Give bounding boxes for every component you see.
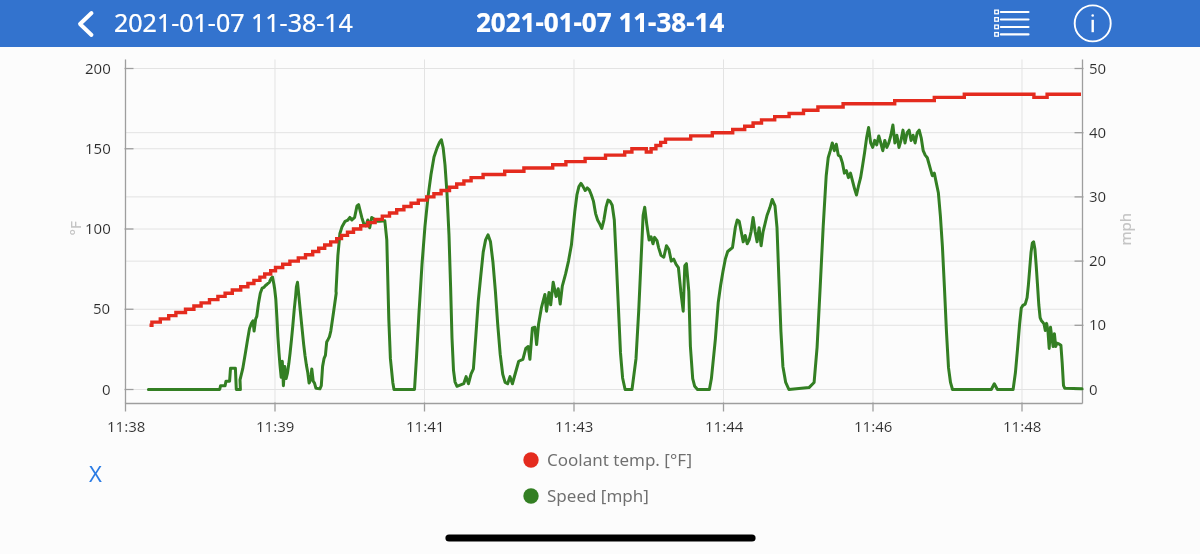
staticText: 40: [1089, 122, 1107, 142]
staticText: 11:38: [107, 416, 146, 436]
button[interactable]: Back: [72, 0, 371, 47]
staticText: 2021-01-07 11-38-14: [476, 4, 725, 39]
staticText: Coolant temp. [°F]: [547, 448, 692, 471]
button[interactable]: Info: [1069, 0, 1117, 47]
staticText: 200: [85, 58, 111, 78]
staticText: Speed [mph]: [547, 484, 649, 507]
staticText: 11:41: [406, 416, 445, 436]
button[interactable]: Show list: [979, 2, 1043, 46]
staticText: X: [89, 458, 102, 488]
button[interactable]: Speed [mph]: [517, 482, 649, 510]
staticText: 100: [85, 218, 111, 238]
staticText: 2021-01-07 11-38-14: [114, 5, 353, 39]
staticText: 30: [1089, 186, 1107, 206]
staticText: 11:46: [854, 416, 893, 436]
staticText: mph: [1114, 212, 1134, 245]
staticText: 11:44: [705, 416, 744, 436]
staticText: 11:43: [555, 416, 594, 436]
staticText: 11:48: [1003, 416, 1042, 436]
staticText: 0: [102, 379, 111, 399]
staticText: 0: [1089, 379, 1098, 399]
button[interactable]: Coolant temp. [°F]: [517, 446, 692, 474]
staticText: 50: [93, 298, 111, 318]
staticText: 50: [1089, 58, 1107, 78]
staticText: °F: [64, 220, 84, 235]
button[interactable]: Close: [78, 456, 112, 490]
staticText: 11:39: [256, 416, 295, 436]
staticText: 150: [85, 138, 111, 158]
staticText: 20: [1089, 250, 1107, 270]
staticText: 10: [1089, 314, 1107, 334]
other: Back: [72, 10, 100, 38]
